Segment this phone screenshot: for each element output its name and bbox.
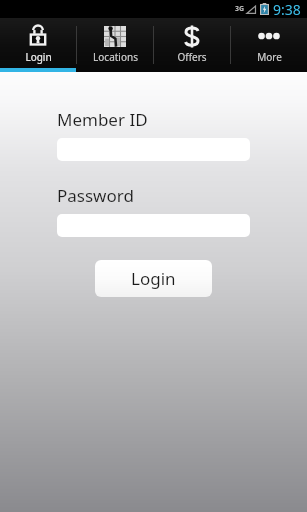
staticText: 3G	[235, 4, 245, 14]
staticText: Password	[57, 184, 134, 207]
staticText: Login	[131, 267, 176, 290]
staticText: Member ID	[57, 108, 148, 131]
other: Login	[28, 25, 48, 47]
staticText: 9:38	[273, 0, 301, 18]
staticText: Locations	[93, 50, 138, 64]
button[interactable]: Login	[95, 260, 212, 297]
button[interactable]: Login	[0, 18, 76, 72]
other: Locations	[104, 26, 126, 47]
button[interactable]: Locations	[77, 18, 153, 72]
other: Offers	[182, 25, 202, 48]
button[interactable]: More	[231, 18, 307, 72]
button[interactable]: Offers	[154, 18, 230, 72]
staticText: Offers	[177, 50, 207, 64]
staticText: More	[257, 50, 282, 64]
staticText: Login	[25, 50, 52, 64]
other: More	[258, 32, 280, 40]
